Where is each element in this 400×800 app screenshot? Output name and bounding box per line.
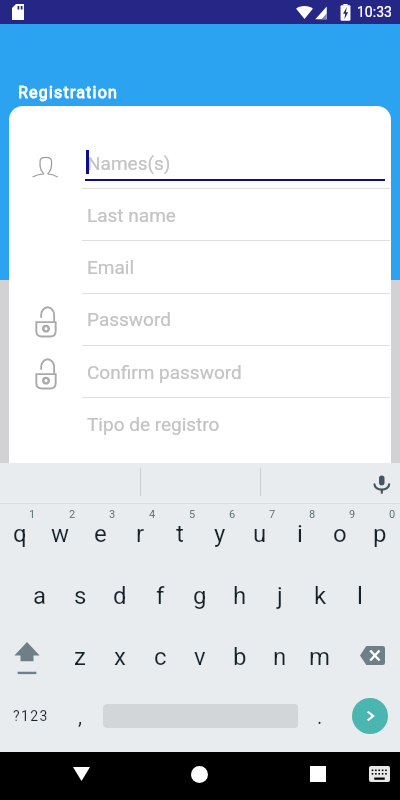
button[interactable]: Back bbox=[61, 754, 101, 794]
button[interactable]: Recent apps bbox=[298, 754, 338, 794]
button[interactable]: Confirm password bbox=[82, 352, 391, 392]
button[interactable]: Enter bbox=[352, 698, 388, 734]
staticText: l bbox=[357, 582, 363, 610]
button[interactable]: Home bbox=[179, 754, 219, 794]
staticText: w bbox=[51, 520, 70, 548]
button[interactable]: w bbox=[40, 510, 80, 558]
button[interactable]: x bbox=[100, 633, 140, 681]
staticText: d bbox=[113, 582, 127, 610]
staticText: a bbox=[33, 582, 47, 610]
staticText: 10:33 bbox=[357, 4, 392, 20]
button[interactable]: l bbox=[340, 572, 380, 620]
staticText: z bbox=[74, 643, 86, 671]
button[interactable]: j bbox=[260, 572, 300, 620]
staticText: k bbox=[314, 582, 327, 610]
staticText: q bbox=[13, 520, 27, 548]
staticText: x bbox=[114, 643, 126, 671]
staticText: u bbox=[253, 520, 267, 548]
button[interactable]: ?123 bbox=[5, 694, 57, 738]
staticText: p bbox=[373, 520, 387, 548]
button[interactable]: a bbox=[20, 572, 60, 620]
staticText: , bbox=[78, 705, 82, 728]
staticText: n bbox=[273, 643, 287, 671]
staticText: g bbox=[193, 582, 207, 610]
button[interactable]: Backspace bbox=[352, 633, 392, 681]
button[interactable]: d bbox=[100, 572, 140, 620]
button[interactable]: Last name bbox=[82, 195, 391, 235]
staticText: b bbox=[233, 643, 247, 671]
button[interactable]: Tipo de registro bbox=[82, 404, 391, 444]
staticText: 3 bbox=[109, 508, 116, 521]
staticText: i bbox=[297, 520, 303, 548]
staticText: Confirm password bbox=[87, 361, 242, 383]
button[interactable]: m bbox=[300, 633, 340, 681]
staticText: 6 bbox=[229, 508, 236, 521]
staticText: h bbox=[233, 582, 247, 610]
staticText: j bbox=[277, 582, 283, 610]
button[interactable]: b bbox=[220, 633, 260, 681]
staticText: 4 bbox=[149, 508, 156, 521]
staticText: . bbox=[317, 705, 323, 728]
staticText: 8 bbox=[309, 508, 316, 521]
button[interactable]: Password bbox=[82, 299, 391, 339]
button[interactable]: t bbox=[160, 510, 200, 558]
button[interactable]: . bbox=[300, 694, 340, 738]
staticText: 7 bbox=[269, 508, 276, 521]
button[interactable]: Voice input bbox=[363, 468, 400, 503]
staticText: ?123 bbox=[13, 708, 49, 724]
button[interactable]: Shift bbox=[7, 633, 47, 681]
button[interactable]: p bbox=[360, 510, 400, 558]
button[interactable]: , bbox=[60, 694, 100, 738]
button[interactable]: Names(s) bbox=[82, 143, 391, 183]
staticText: s bbox=[74, 582, 87, 610]
button[interactable]: y bbox=[200, 510, 240, 558]
staticText: 1 bbox=[29, 508, 36, 521]
button[interactable]: Switch keyboard bbox=[359, 754, 399, 794]
staticText: 5 bbox=[189, 508, 196, 521]
staticText: Email bbox=[87, 256, 135, 278]
button[interactable]: h bbox=[220, 572, 260, 620]
button[interactable]: u bbox=[240, 510, 280, 558]
staticText: o bbox=[333, 520, 347, 548]
button[interactable]: o bbox=[320, 510, 360, 558]
button[interactable]: r bbox=[120, 510, 160, 558]
staticText: m bbox=[309, 643, 331, 671]
button[interactable]: s bbox=[60, 572, 100, 620]
staticText: 9 bbox=[349, 508, 356, 521]
button[interactable]: f bbox=[140, 572, 180, 620]
staticText: y bbox=[214, 520, 226, 548]
staticText: Last name bbox=[87, 204, 176, 226]
button[interactable]: k bbox=[300, 572, 340, 620]
button[interactable]: c bbox=[140, 633, 180, 681]
staticText: t bbox=[176, 520, 184, 548]
button[interactable]: Email bbox=[82, 247, 391, 287]
button[interactable]: e bbox=[80, 510, 120, 558]
staticText: 0 bbox=[389, 508, 396, 521]
button[interactable]: v bbox=[180, 633, 220, 681]
staticText: 2 bbox=[69, 508, 76, 521]
staticText: f bbox=[156, 582, 165, 610]
staticText: v bbox=[194, 643, 206, 671]
button[interactable]: i bbox=[280, 510, 320, 558]
staticText: Registration bbox=[18, 83, 119, 102]
staticText: Tipo de registro bbox=[87, 413, 220, 435]
staticText: Password bbox=[87, 308, 171, 330]
button[interactable]: q bbox=[0, 510, 40, 558]
staticText: r bbox=[136, 520, 145, 548]
button[interactable]: g bbox=[180, 572, 220, 620]
staticText: c bbox=[154, 643, 167, 671]
button[interactable]: n bbox=[260, 633, 300, 681]
staticText: e bbox=[94, 520, 107, 548]
button[interactable]: z bbox=[60, 633, 100, 681]
staticText: Names(s) bbox=[87, 152, 171, 174]
